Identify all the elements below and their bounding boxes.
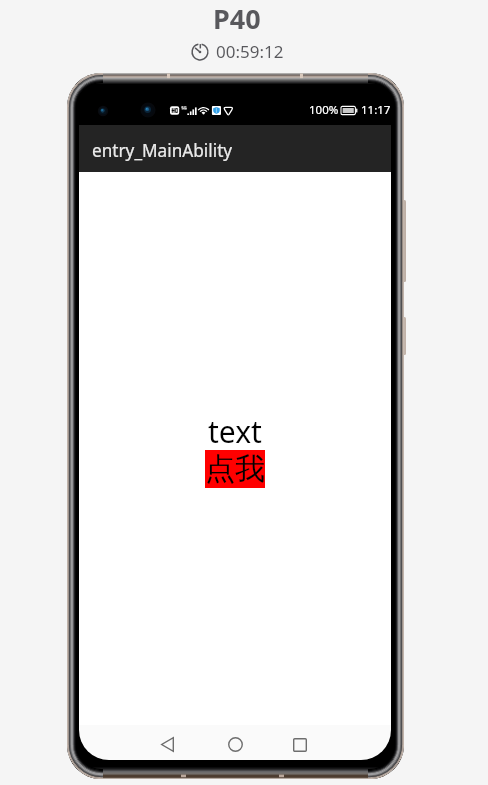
button[interactable]: Home [217, 725, 253, 760]
staticText: 点我 [205, 450, 265, 488]
button[interactable]: Recent apps [282, 725, 318, 760]
button[interactable]: 点我 [205, 450, 265, 488]
staticText: P40 [213, 0, 261, 32]
staticText: text [208, 411, 262, 452]
staticText: entry_MainAbility [92, 139, 233, 162]
button[interactable]: Back [149, 725, 185, 760]
staticText: 11:17 [361, 102, 391, 118]
staticText: 100% [309, 102, 339, 118]
staticText: 00:59:12 [216, 40, 284, 63]
